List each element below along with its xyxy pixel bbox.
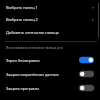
button[interactable]: Экран блокировки [0, 53, 100, 67]
staticText: Защита программ [6, 86, 39, 91]
button[interactable]: Выбрать палец 1 [0, 0, 100, 13]
button[interactable]: Выбрать палец 2 [0, 13, 100, 26]
staticText: Выбрать палец 2 [6, 17, 91, 22]
staticText: Использовать отпечаток пальца для [6, 46, 63, 50]
staticText: Выбрать палец 1 [6, 5, 91, 10]
button[interactable]: Добавить отпечаток пальца [0, 26, 100, 39]
button[interactable]: Защита программ [0, 81, 100, 95]
staticText: Экран блокировки [6, 58, 40, 63]
button[interactable]: Защита сохранённых данных [0, 67, 100, 81]
staticText: Добавить отпечаток пальца [6, 30, 95, 35]
staticText: Защита сохранённых данных [6, 72, 59, 77]
